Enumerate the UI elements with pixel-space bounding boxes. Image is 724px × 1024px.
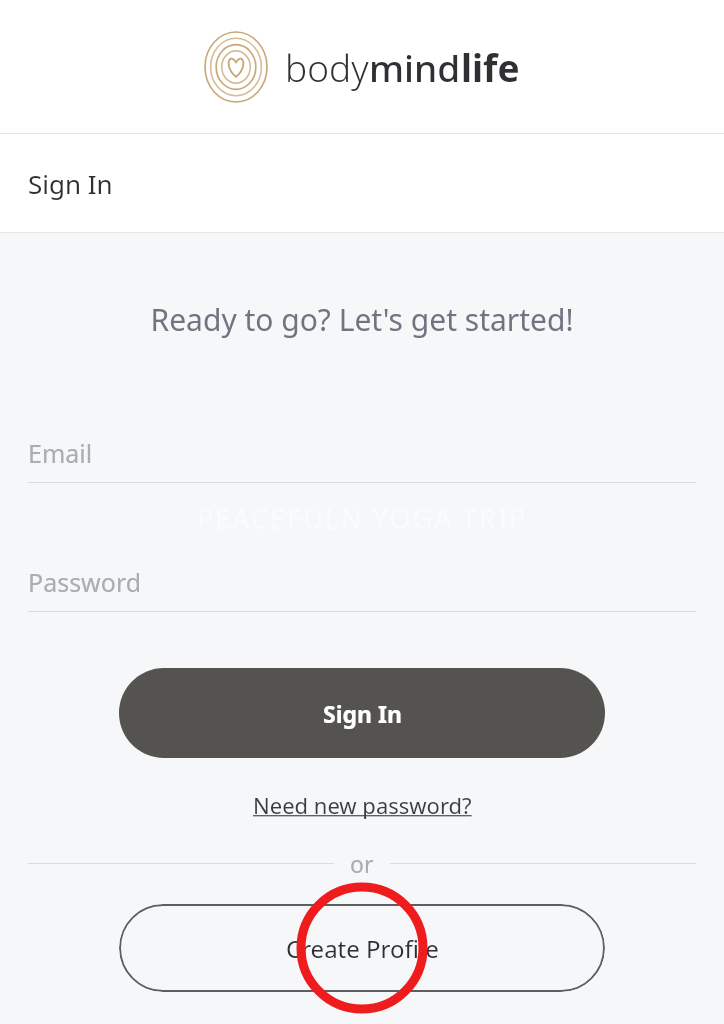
staticText: Sign In [323,698,402,729]
other: bodymindlife logo [205,32,267,102]
staticText: body [285,42,369,92]
button[interactable]: Password [28,553,696,612]
button[interactable]: Create Profile [119,904,605,992]
staticText: life [461,42,520,92]
staticText: Create Profile [286,932,439,965]
staticText: Ready to go? Let's get started! [0,299,724,340]
button[interactable]: Sign In [119,668,605,758]
button[interactable]: Email [28,424,696,483]
staticText: or [350,848,374,879]
staticText: Email [28,436,93,470]
staticText: Password [28,565,142,599]
button[interactable]: Need new password? [243,784,482,826]
staticText: Sign In [28,166,113,201]
staticText: Need new password? [253,790,472,820]
staticText: mind [369,42,461,92]
